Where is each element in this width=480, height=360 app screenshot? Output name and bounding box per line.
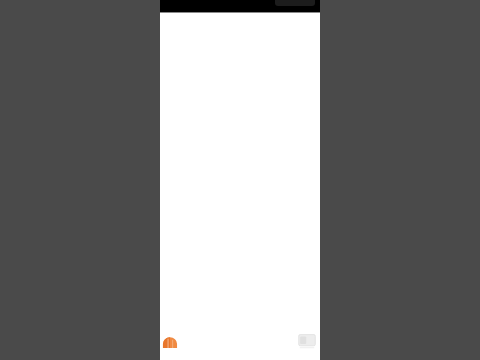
- button[interactable]: Card badge: [298, 333, 316, 349]
- button[interactable]: Open brand menu: [162, 335, 178, 349]
